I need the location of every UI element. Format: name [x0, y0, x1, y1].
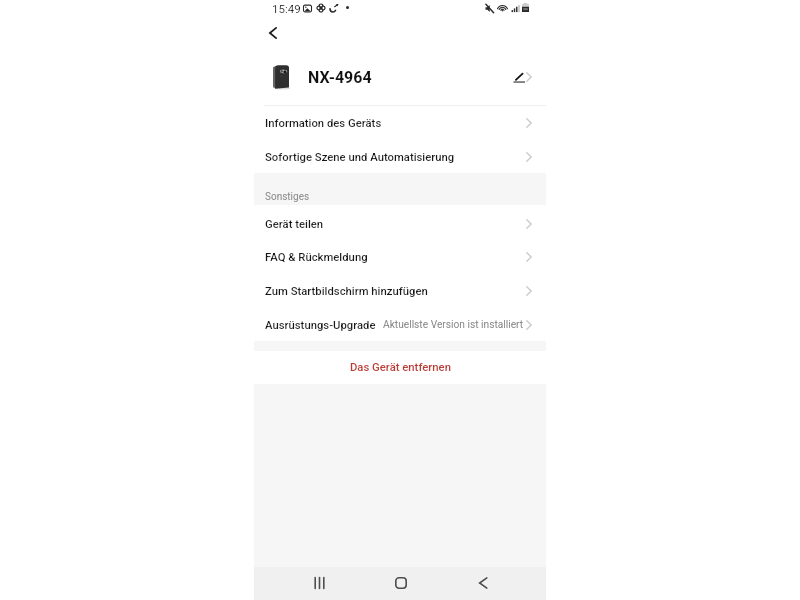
button[interactable]: Gerät teilen	[254, 207, 546, 241]
button[interactable]: Recent apps	[304, 567, 336, 600]
staticText: Information des Geräts	[265, 117, 382, 130]
button[interactable]: Ausrüstungs-Upgrade	[254, 308, 546, 342]
staticText: Sofortige Szene und Automatisierung	[265, 151, 455, 164]
button[interactable]: Edit device name	[513, 56, 532, 98]
button[interactable]: Back	[260, 19, 286, 45]
staticText: 15:49	[272, 2, 301, 15]
button[interactable]: Information des Geräts	[254, 106, 546, 140]
staticText: Aktuellste Version ist installiert	[383, 319, 524, 331]
button[interactable]: NX-4964	[254, 56, 546, 98]
button[interactable]: Zum Startbildschirm hinzufügen	[254, 274, 546, 308]
staticText: Das Gerät entfernen	[350, 361, 451, 374]
staticText: Sonstiges	[265, 191, 310, 203]
staticText: Ausrüstungs-Upgrade	[265, 319, 376, 332]
button[interactable]: Back	[467, 567, 499, 600]
button[interactable]: Das Gerät entfernen	[254, 351, 546, 384]
staticText: FAQ & Rückmeldung	[265, 251, 368, 264]
button[interactable]: Home	[385, 567, 417, 600]
button[interactable]: Sofortige Szene und Automatisierung	[254, 140, 546, 174]
staticText: NX-4964	[308, 68, 372, 87]
button[interactable]: FAQ & Rückmeldung	[254, 240, 546, 274]
staticText: Zum Startbildschirm hinzufügen	[265, 285, 428, 298]
staticText: Gerät teilen	[265, 218, 324, 231]
